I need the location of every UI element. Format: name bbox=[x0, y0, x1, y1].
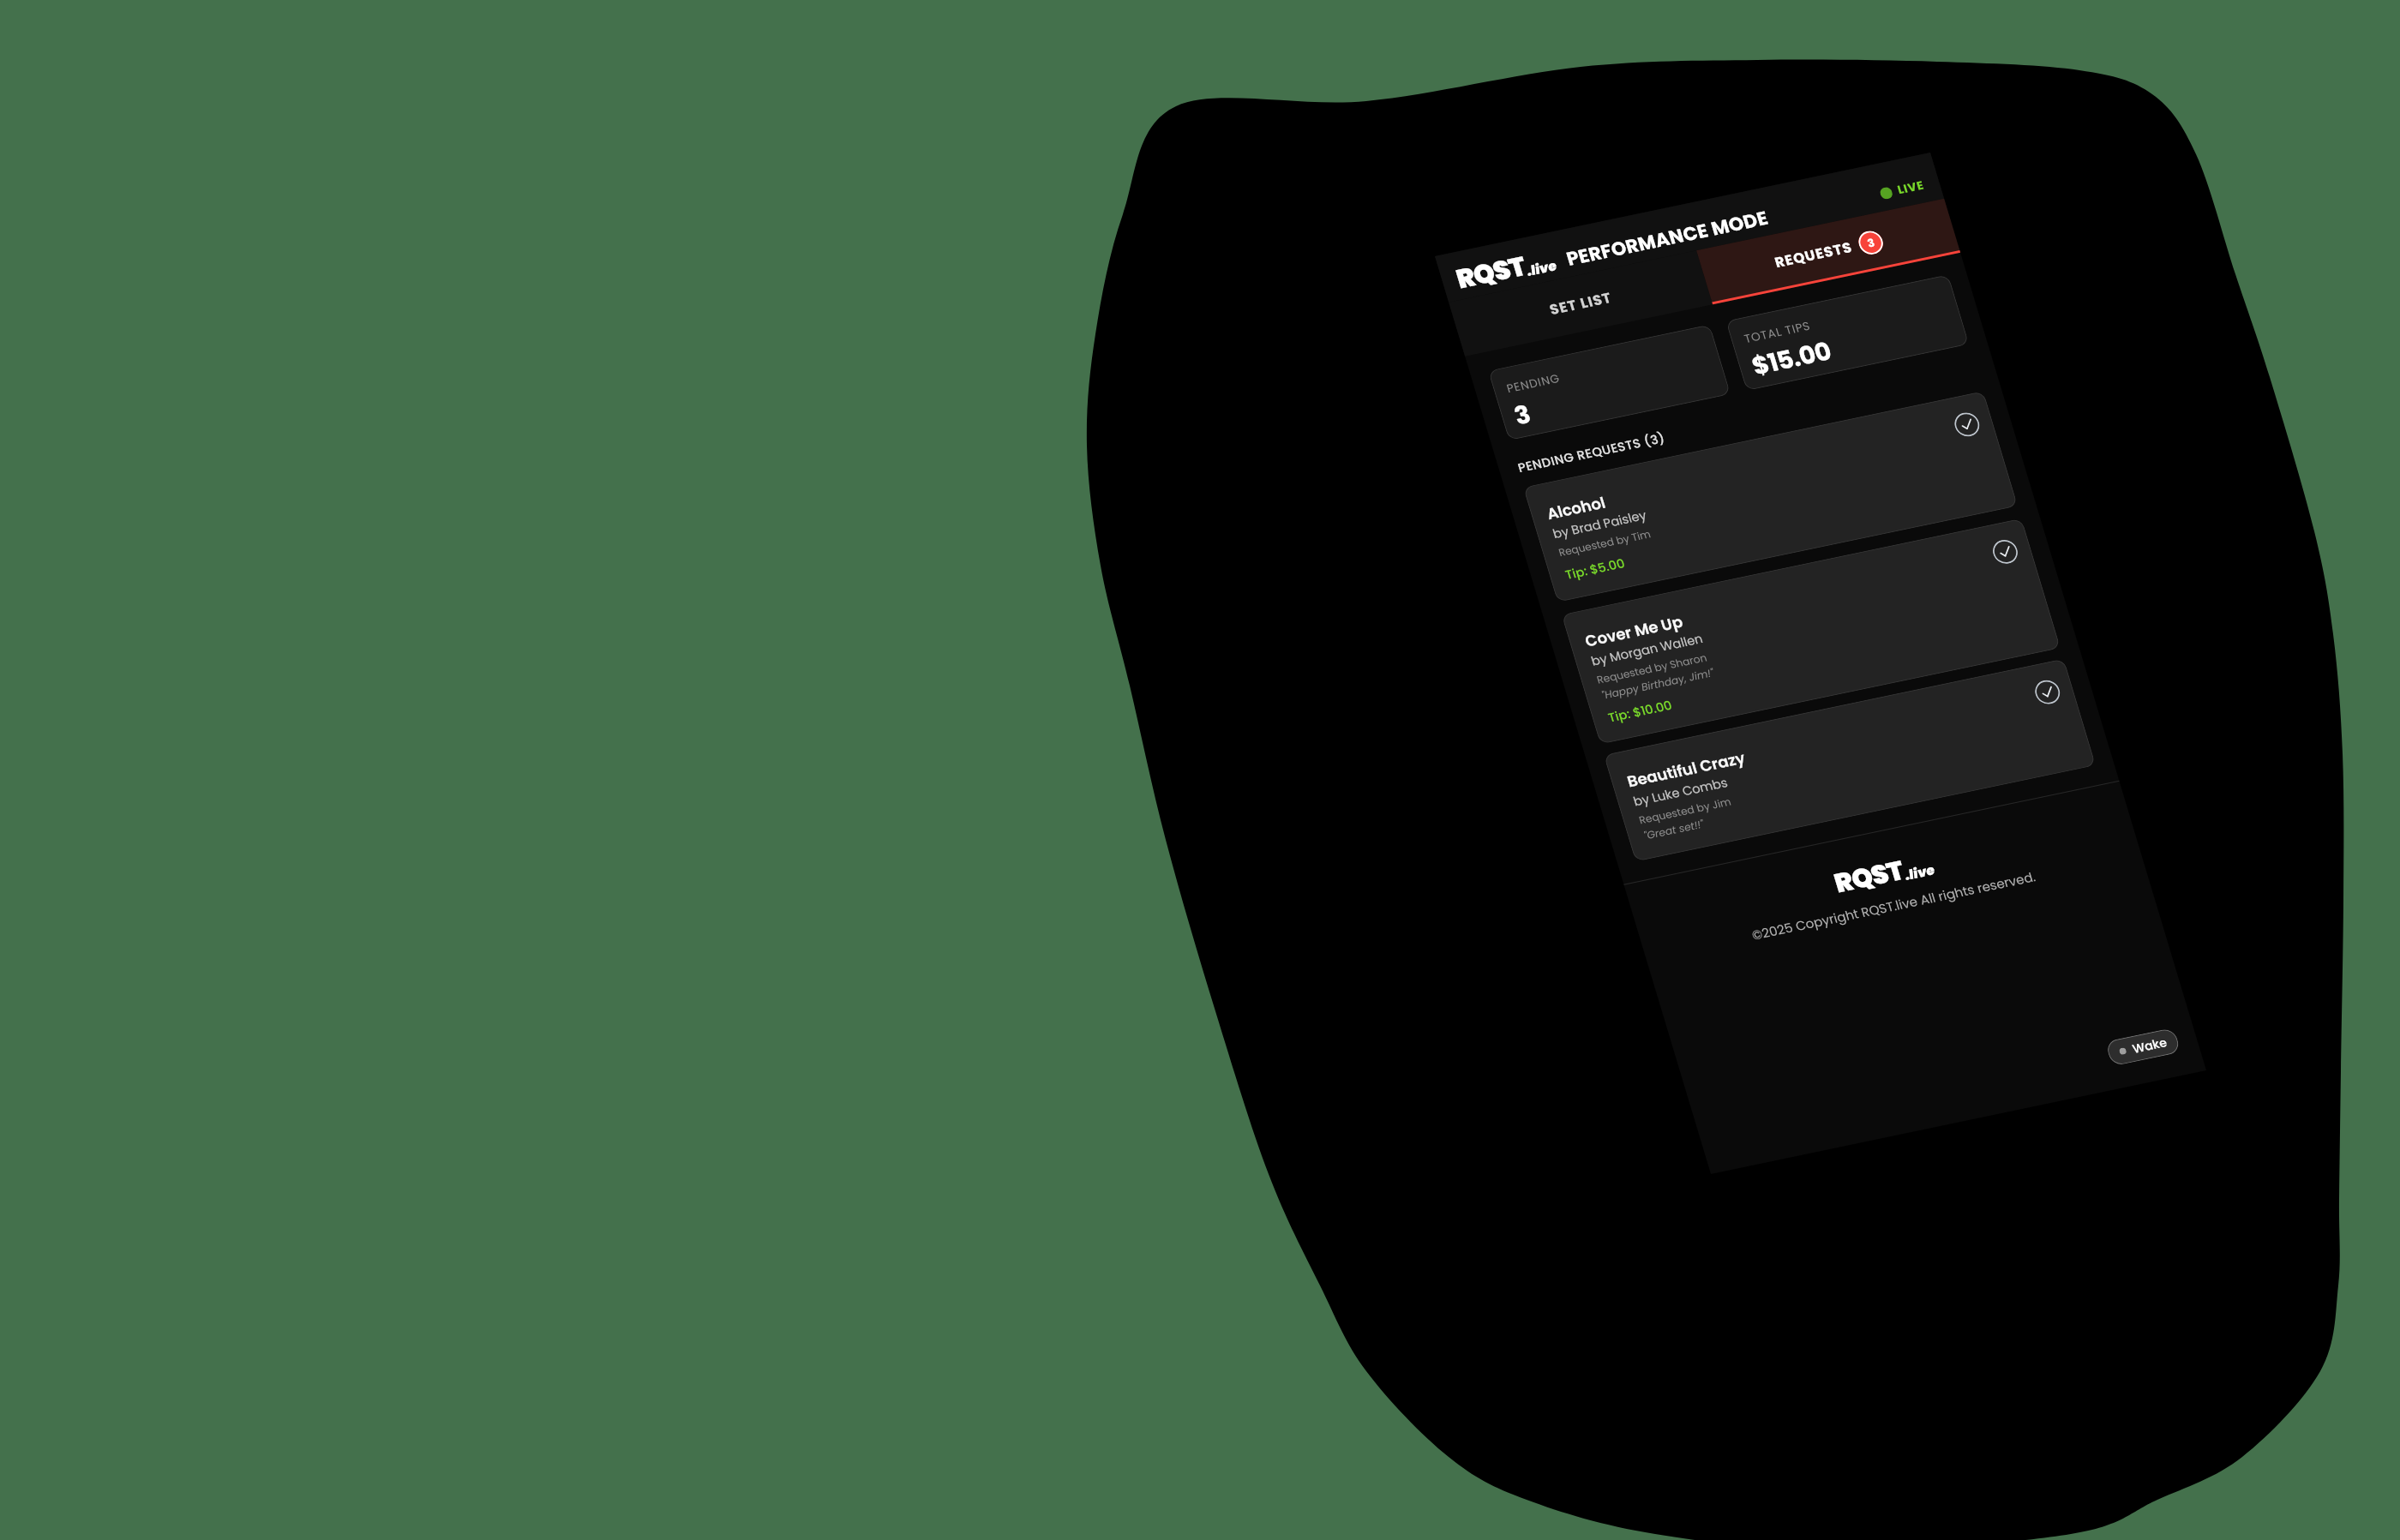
staticText: Requested by Jim bbox=[1632, 759, 1738, 862]
button[interactable]: Beautiful Crazy bbox=[1565, 482, 2134, 1038]
staticText: LIVE bbox=[1890, 167, 1932, 208]
staticText: by Morgan Wallen bbox=[1583, 588, 1711, 712]
button[interactable]: PENDING bbox=[1463, 239, 1756, 526]
staticText: SET LIST bbox=[1541, 264, 1621, 343]
staticText: .live bbox=[1896, 850, 1944, 896]
staticText: by Brad Paisley bbox=[1545, 471, 1655, 578]
button[interactable]: REQUESTS bbox=[1677, 104, 1980, 400]
staticText: RQST bbox=[1817, 825, 1921, 927]
staticText: 3 bbox=[1860, 232, 1882, 253]
staticText: PENDING bbox=[1499, 350, 1568, 417]
button[interactable]: Accept request bbox=[2023, 668, 2072, 716]
staticText: Requested by Tim bbox=[1552, 491, 1657, 595]
staticText: TOTAL TIPS bbox=[1737, 292, 1819, 373]
staticText: Alcohol bbox=[1537, 470, 1616, 547]
staticText: PERFORMANCE MODE bbox=[1554, 128, 1781, 349]
staticText: $15.00 bbox=[1736, 304, 1848, 414]
staticText: RQST bbox=[1439, 221, 1543, 323]
button[interactable]: SET LIST bbox=[1429, 155, 1732, 451]
staticText: PENDING REQUESTS (3) bbox=[1510, 373, 1674, 533]
button[interactable]: Accept request bbox=[1981, 528, 2030, 576]
button[interactable]: Accept request bbox=[1943, 401, 1991, 448]
staticText: by Luke Combs bbox=[1625, 738, 1736, 846]
button[interactable]: Cover Me Up bbox=[1515, 342, 2107, 921]
staticText: Tip: $10.00 bbox=[1600, 672, 1681, 751]
staticText: .live bbox=[1518, 245, 1566, 292]
staticText: Wake bbox=[2125, 1021, 2175, 1070]
staticText: Beautiful Crazy bbox=[1617, 702, 1756, 837]
staticText: Requested by Sharon bbox=[1590, 608, 1714, 729]
button[interactable]: Alcohol bbox=[1482, 215, 2059, 779]
staticText: Cover Me Up bbox=[1575, 573, 1693, 689]
button[interactable]: TOTAL TIPS bbox=[1701, 189, 1994, 476]
staticText: "Great set!!" bbox=[1637, 794, 1711, 866]
staticText: REQUESTS bbox=[1766, 208, 1862, 302]
staticText: Tip: $5.00 bbox=[1557, 532, 1633, 606]
staticText: "Happy Birthday, Jim!" bbox=[1595, 622, 1721, 746]
staticText: ©2025 Copyright RQST.live All rights res… bbox=[1637, 655, 2150, 1156]
button[interactable]: Wake bbox=[2096, 1001, 2190, 1093]
staticText: 3 bbox=[1498, 391, 1548, 440]
